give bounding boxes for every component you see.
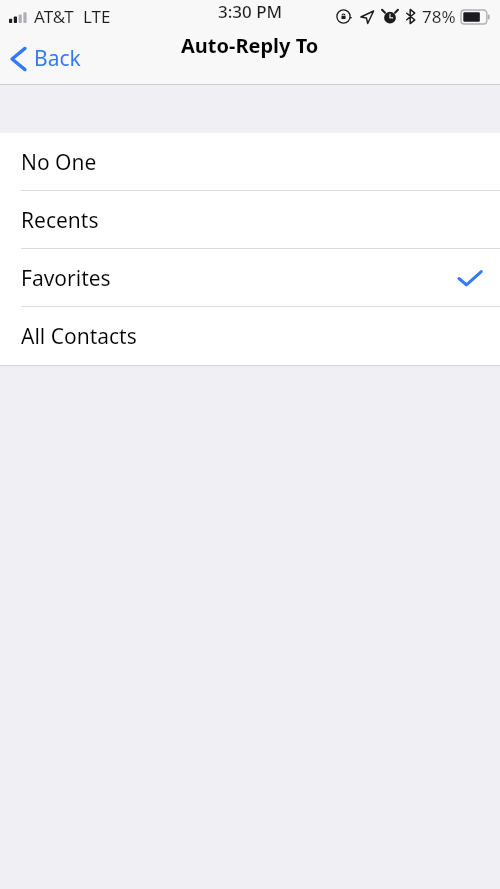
staticText: 78% (422, 5, 456, 28)
staticText: Back (34, 44, 81, 73)
staticText: 3:30 PM (218, 0, 283, 23)
button[interactable]: Recents (0, 191, 500, 249)
staticText: Favorites (21, 264, 111, 293)
button[interactable]: No One (0, 133, 500, 191)
button[interactable]: Favorites (0, 249, 500, 307)
staticText: AT&T (34, 5, 74, 28)
staticText: Auto-Reply To (181, 32, 319, 59)
staticText: Recents (21, 206, 99, 235)
button[interactable]: Back (0, 32, 93, 85)
staticText: LTE (83, 5, 111, 28)
button[interactable]: All Contacts (0, 307, 500, 365)
staticText: All Contacts (21, 322, 137, 351)
staticText: No One (21, 148, 97, 177)
